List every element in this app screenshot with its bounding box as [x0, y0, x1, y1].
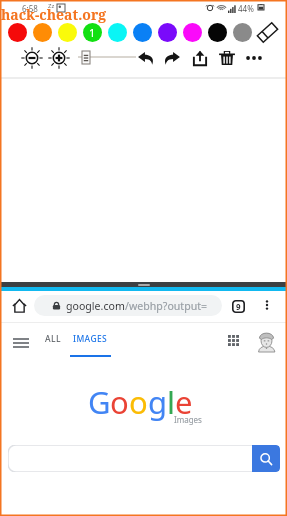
button[interactable]: IMAGES [70, 322, 111, 355]
button[interactable] [33, 23, 52, 42]
staticText: g [148, 381, 167, 423]
staticText: ALL [45, 333, 61, 345]
staticText: G [88, 381, 110, 423]
staticText: 9 [236, 301, 241, 312]
staticText: l [167, 381, 175, 423]
staticText: google.com [66, 299, 125, 313]
button[interactable] [133, 23, 152, 42]
button[interactable]: Account [256, 331, 277, 352]
button[interactable]: Tool [218, 49, 236, 67]
staticText: hack-cheat.org [1, 5, 107, 24]
button[interactable]: Eraser [257, 22, 278, 43]
button[interactable]: Tool [245, 49, 263, 67]
staticText: 6:58 [22, 3, 38, 14]
staticText: o [110, 381, 129, 423]
button[interactable]: Tool [163, 49, 181, 67]
button[interactable] [208, 23, 227, 42]
button[interactable]: Google apps [228, 335, 239, 346]
button[interactable]: Decrease brightness [22, 48, 42, 68]
button[interactable] [183, 23, 202, 42]
button[interactable] [108, 23, 127, 42]
staticText: /webhp?output= [125, 299, 208, 313]
staticText: o [129, 381, 148, 423]
button[interactable] [158, 23, 177, 42]
staticText: 44% [238, 3, 254, 14]
button[interactable]: Brush size [82, 51, 90, 64]
button[interactable]: Increase brightness [49, 48, 69, 68]
staticText: Zz [48, 2, 55, 10]
staticText: Images [174, 414, 202, 425]
button[interactable]: Tool [137, 49, 155, 67]
button[interactable]: 1 [83, 23, 102, 42]
button[interactable]: ALL [43, 322, 63, 355]
button[interactable]: Tabs [232, 300, 245, 313]
button[interactable]: Search [252, 445, 280, 472]
button[interactable] [233, 23, 252, 42]
staticText: e [175, 381, 192, 423]
staticText: IMAGES [73, 333, 108, 345]
button[interactable]: Home [12, 298, 27, 313]
button[interactable]: More options [261, 299, 273, 311]
button[interactable]: Tool [191, 49, 209, 67]
button[interactable]: Menu [13, 335, 29, 351]
button[interactable]: google.com [34, 295, 222, 316]
button[interactable] [8, 23, 27, 42]
button[interactable] [58, 23, 77, 42]
staticText: 1 [89, 25, 96, 40]
